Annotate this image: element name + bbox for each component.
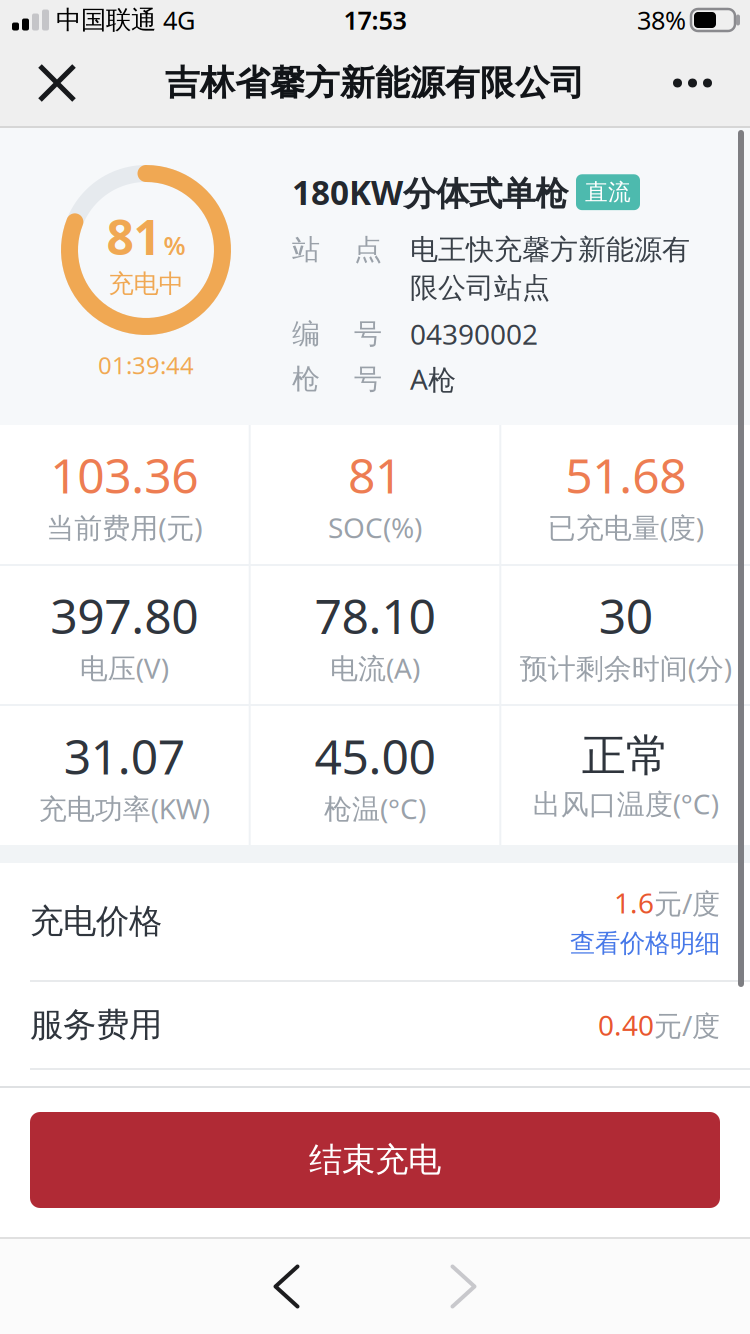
staticText: 31.07 <box>64 724 185 788</box>
button[interactable]: 结束充电 <box>30 1112 720 1208</box>
button[interactable]: 后退 <box>275 1266 297 1306</box>
staticText: 81 <box>106 205 160 268</box>
staticText: 查看价格明细 <box>570 928 720 959</box>
staticText: 结束充电 <box>309 1139 441 1180</box>
staticText: 元/度 <box>654 884 720 922</box>
staticText: 直流 <box>585 178 631 206</box>
staticText: 充电中 <box>108 268 183 299</box>
staticText: 出风口温度(°C) <box>533 785 719 822</box>
staticText: % <box>163 228 185 262</box>
staticText: 充电功率(KW) <box>39 790 210 827</box>
staticText: 01:39:44 <box>98 349 194 381</box>
staticText: 103.36 <box>50 443 198 507</box>
staticText: 0.40 <box>598 1006 654 1043</box>
staticText: 站 <box>292 232 320 267</box>
staticText: 充电价格 <box>30 901 162 942</box>
staticText: 30 <box>599 583 653 647</box>
staticText: 4G <box>163 3 195 37</box>
staticText: 17:53 <box>343 3 406 37</box>
staticText: 81 <box>348 443 402 507</box>
staticText: 45.00 <box>314 724 435 788</box>
staticText: 号 <box>354 317 382 351</box>
staticText: A枪 <box>410 360 456 398</box>
staticText: 正常 <box>582 729 670 783</box>
staticText: 枪温(°C) <box>324 790 426 827</box>
staticText: 号 <box>354 362 382 396</box>
staticText: SOC(%) <box>328 509 422 546</box>
staticText: 吉林省馨方新能源有限公司 <box>165 62 585 104</box>
staticText: 预计剩余时间(分) <box>520 649 732 686</box>
staticText: 04390002 <box>410 315 538 352</box>
staticText: 1.6 <box>614 884 654 921</box>
staticText: 服务费用 <box>30 1004 162 1045</box>
staticText: 已充电量(度) <box>548 509 704 546</box>
button[interactable]: 查看价格明细 <box>570 928 720 959</box>
staticText: 51.68 <box>565 443 686 507</box>
staticText: 电王快充馨方新能源有 <box>410 232 690 267</box>
staticText: 397.80 <box>50 583 198 647</box>
button[interactable]: 更多 <box>673 78 750 87</box>
staticText: 电流(A) <box>330 649 420 686</box>
staticText: 当前费用(元) <box>46 509 202 546</box>
button[interactable]: 关闭 <box>0 66 74 100</box>
staticText: 编 <box>292 317 320 351</box>
staticText: 枪 <box>292 362 320 396</box>
button[interactable]: 前进 <box>452 1266 474 1306</box>
staticText: 78.10 <box>314 583 435 647</box>
staticText: 点 <box>354 232 382 267</box>
staticText: 元/度 <box>654 1007 720 1044</box>
staticText: 中国联通 <box>56 4 156 35</box>
staticText: 电压(V) <box>80 649 169 686</box>
staticText: 38% <box>637 3 686 37</box>
staticText: 限公司站点 <box>410 271 550 305</box>
staticText: 180KW分体式单枪 <box>292 170 568 214</box>
